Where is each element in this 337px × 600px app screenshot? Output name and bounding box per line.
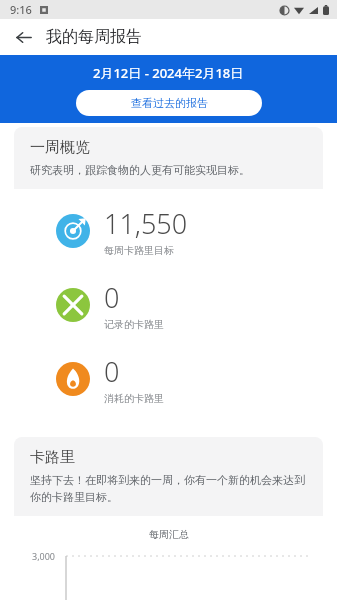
staticText: 记录的卡路里 <box>104 318 164 331</box>
staticText: 3,000 <box>32 550 56 562</box>
button[interactable]: 0 <box>14 353 323 405</box>
staticText: 查看过去的报告 <box>131 96 208 110</box>
button[interactable]: 11,550 <box>14 205 323 257</box>
staticText: 每周卡路里目标 <box>104 244 174 257</box>
staticText: 11,550 <box>104 205 188 242</box>
staticText: 9:16 <box>10 2 32 17</box>
staticText: 0 <box>104 279 120 316</box>
staticText: 每周汇总 <box>149 528 189 541</box>
staticText: 研究表明，跟踪食物的人更有可能实现目标。 <box>30 163 250 177</box>
button[interactable]: 0 <box>14 279 323 331</box>
staticText: 坚持下去！在即将到来的一周，你有一个新的机会来达到你的卡路里目标。 <box>30 473 307 504</box>
staticText: 我的每周报告 <box>46 27 142 47</box>
button[interactable]: Back <box>6 20 40 54</box>
staticText: 0 <box>104 353 120 390</box>
staticText: 一周概览 <box>30 138 90 157</box>
button[interactable]: 查看过去的报告 <box>76 90 262 116</box>
staticText: 消耗的卡路里 <box>104 392 164 405</box>
staticText: 2月12日 - 2024年2月18日 <box>93 64 244 82</box>
staticText: 卡路里 <box>30 448 75 467</box>
